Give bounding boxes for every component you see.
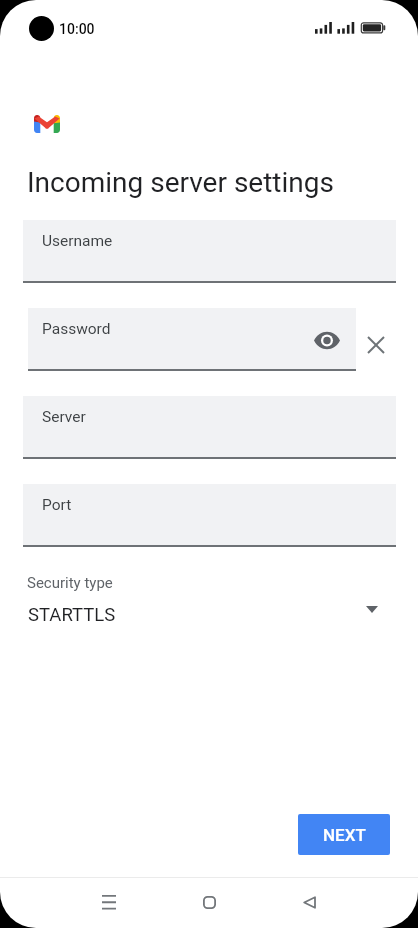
staticText: NEXT [323, 825, 366, 845]
button[interactable]: Server [23, 396, 396, 459]
button[interactable]: Clear password [358, 327, 394, 363]
staticText: Security type [27, 574, 113, 592]
button[interactable]: Show password [310, 323, 344, 357]
staticText: Port [42, 496, 72, 514]
button[interactable]: Home [185, 878, 233, 926]
button[interactable]: Username [23, 220, 396, 283]
staticText: 10:00 [59, 21, 95, 37]
staticText: Incoming server settings [27, 166, 334, 199]
staticText: Username [42, 232, 113, 250]
staticText: Password [42, 320, 111, 338]
staticText: STARTTLS [28, 604, 116, 626]
button[interactable]: Port [23, 484, 396, 547]
button[interactable]: Back [285, 878, 333, 926]
staticText: Server [42, 408, 86, 426]
button[interactable]: Security type [22, 565, 396, 627]
button[interactable]: NEXT [298, 814, 390, 855]
button[interactable]: Recent apps [85, 878, 133, 926]
button[interactable]: Password [28, 308, 356, 371]
